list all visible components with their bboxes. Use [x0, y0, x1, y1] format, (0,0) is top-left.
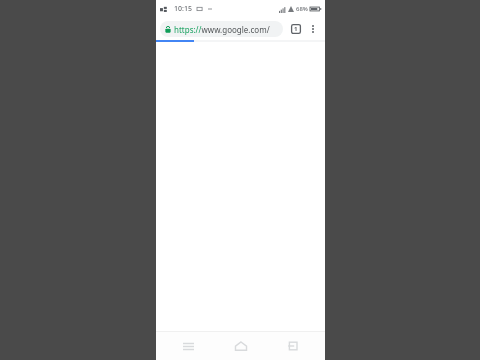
button[interactable]: Recent apps: [168, 332, 208, 360]
button[interactable]: Customize and control Chrome: [305, 21, 321, 37]
button[interactable]: Switch tabs, 1 tab: [287, 20, 305, 38]
staticText: 68%: [296, 5, 308, 13]
staticText: 10:15: [174, 4, 192, 14]
staticText: https://www.google.com/: [174, 24, 270, 35]
button[interactable]: https://www.google.com/: [160, 21, 283, 37]
button[interactable]: Home: [221, 332, 261, 360]
staticText: 1: [294, 25, 298, 33]
button[interactable]: Back: [273, 332, 313, 360]
